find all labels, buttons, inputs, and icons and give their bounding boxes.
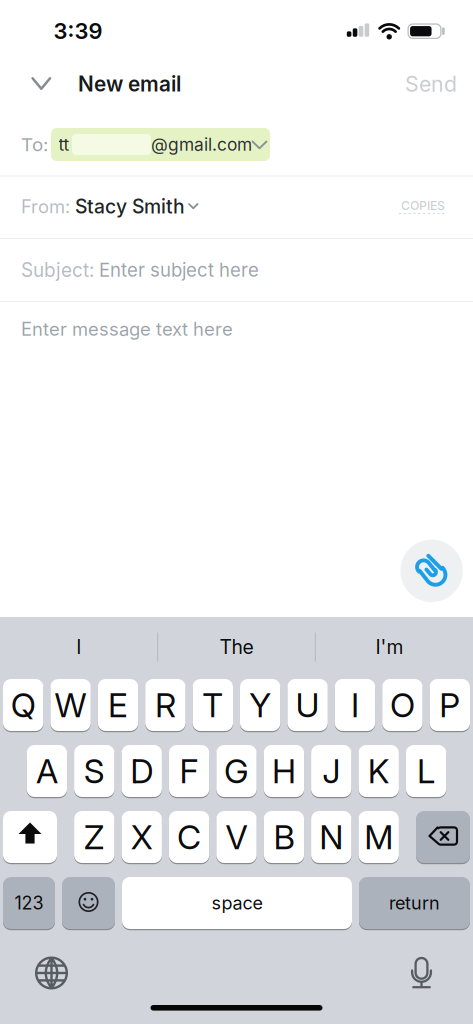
- staticText: Send: [405, 71, 457, 97]
- staticText: K: [368, 751, 390, 791]
- staticText: I: [351, 685, 359, 725]
- button[interactable]: K: [358, 744, 399, 798]
- button[interactable]: [29, 951, 73, 995]
- staticText: O: [390, 685, 415, 725]
- staticText: F: [180, 751, 199, 791]
- staticText: 123: [14, 892, 43, 914]
- staticText: M: [364, 817, 393, 857]
- button[interactable]: return: [359, 876, 470, 930]
- button[interactable]: D: [121, 744, 162, 798]
- button[interactable]: I'm: [319, 627, 459, 667]
- staticText: Enter subject here: [99, 259, 259, 281]
- button[interactable]: COPIES: [392, 198, 454, 216]
- button[interactable]: Z: [74, 810, 114, 864]
- button[interactable]: T: [193, 678, 233, 732]
- button[interactable]: Q: [3, 678, 43, 732]
- button[interactable]: C: [169, 810, 209, 864]
- button[interactable]: The: [166, 627, 306, 667]
- button[interactable]: Y: [240, 678, 280, 732]
- button[interactable]: Subject:: [0, 239, 473, 301]
- staticText: G: [224, 751, 249, 791]
- staticText: S: [84, 751, 105, 791]
- staticText: D: [130, 751, 153, 791]
- staticText: W: [55, 685, 87, 725]
- staticText: N: [319, 817, 343, 857]
- button[interactable]: tt: [51, 128, 270, 161]
- staticText: U: [296, 685, 320, 725]
- button[interactable]: From:: [0, 186, 300, 226]
- button[interactable]: V: [216, 810, 257, 864]
- staticText: To:: [21, 133, 48, 156]
- button[interactable]: Send: [396, 69, 466, 99]
- staticText: Subject:: [21, 258, 99, 281]
- button[interactable]: M: [358, 810, 399, 864]
- button[interactable]: I: [9, 627, 149, 667]
- staticText: B: [273, 817, 294, 857]
- staticText: The: [219, 635, 253, 659]
- button[interactable]: 123: [3, 876, 55, 930]
- staticText: E: [108, 685, 128, 725]
- staticText: Z: [84, 817, 105, 857]
- button[interactable]: S: [74, 744, 114, 798]
- button[interactable]: A: [27, 744, 67, 798]
- button[interactable]: [400, 540, 463, 602]
- button[interactable]: Enter message text here: [0, 303, 473, 355]
- button[interactable]: [3, 810, 57, 864]
- button[interactable]: W: [50, 678, 91, 732]
- staticText: @gmail.com: [151, 134, 252, 155]
- staticText: Stacy Smith: [75, 195, 185, 218]
- button[interactable]: N: [311, 810, 351, 864]
- button[interactable]: F: [169, 744, 209, 798]
- staticText: L: [417, 751, 435, 791]
- button[interactable]: R: [145, 678, 186, 732]
- staticText: tt: [58, 134, 69, 155]
- button[interactable]: space: [122, 876, 352, 930]
- button[interactable]: O: [382, 678, 423, 732]
- staticText: Y: [249, 685, 271, 725]
- button[interactable]: U: [287, 678, 328, 732]
- staticText: space: [211, 892, 262, 914]
- staticText: R: [155, 685, 176, 725]
- staticText: J: [322, 751, 340, 791]
- staticText: return: [389, 892, 440, 914]
- button[interactable]: I: [335, 678, 375, 732]
- staticText: I'm: [375, 635, 403, 659]
- staticText: I: [76, 635, 81, 659]
- staticText: 3:39: [53, 18, 102, 44]
- button[interactable]: G: [216, 744, 257, 798]
- staticText: H: [272, 751, 296, 791]
- button[interactable]: [416, 810, 470, 864]
- button[interactable]: P: [430, 678, 470, 732]
- staticText: V: [225, 817, 247, 857]
- staticText: From:: [21, 195, 75, 218]
- staticText: COPIES: [401, 198, 445, 213]
- button[interactable]: B: [264, 810, 304, 864]
- staticText: A: [36, 751, 58, 791]
- button[interactable]: [25, 69, 57, 97]
- button[interactable]: [399, 950, 443, 994]
- button[interactable]: J: [311, 744, 351, 798]
- button[interactable]: L: [406, 744, 446, 798]
- staticText: New email: [78, 71, 181, 97]
- button[interactable]: H: [264, 744, 304, 798]
- staticText: T: [202, 685, 223, 725]
- staticText: Enter message text here: [21, 318, 233, 340]
- staticText: P: [439, 685, 460, 725]
- button[interactable]: [62, 876, 115, 930]
- button[interactable]: X: [121, 810, 162, 864]
- staticText: Q: [11, 685, 36, 725]
- staticText: C: [177, 817, 201, 857]
- button[interactable]: E: [98, 678, 138, 732]
- staticText: X: [131, 817, 153, 857]
